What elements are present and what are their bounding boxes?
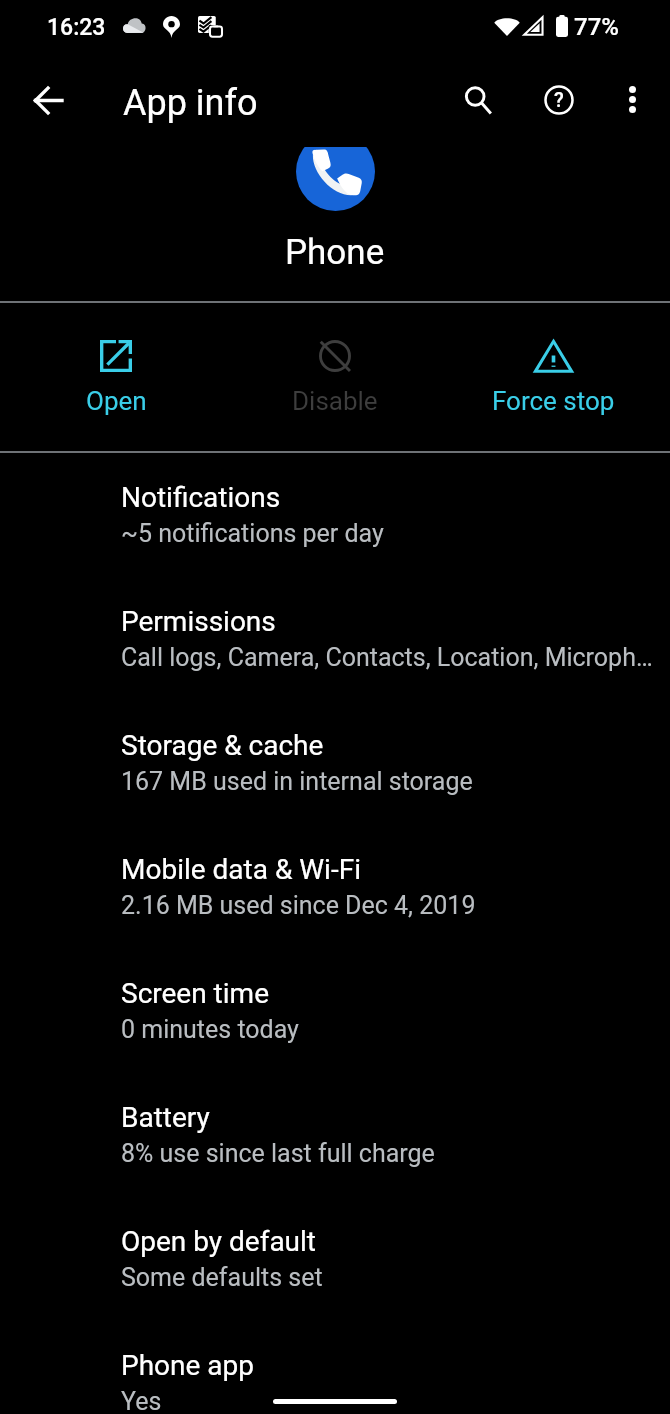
- button[interactable]: Disable: [225, 303, 444, 451]
- button[interactable]: Search: [450, 72, 505, 127]
- staticText: Screen time: [121, 977, 269, 1010]
- staticText: Open by default: [121, 1225, 317, 1258]
- staticText: Permissions: [121, 605, 276, 638]
- button[interactable]: Phone app: [0, 1321, 670, 1414]
- staticText: 0 minutes today: [121, 1015, 299, 1044]
- button[interactable]: Mobile data & Wi-Fi: [0, 825, 670, 949]
- button[interactable]: Force stop: [444, 303, 663, 451]
- staticText: Mobile data & Wi-Fi: [121, 853, 361, 886]
- staticText: Battery: [121, 1101, 210, 1134]
- staticText: Storage & cache: [121, 729, 324, 762]
- button[interactable]: More options: [605, 72, 660, 127]
- staticText: Phone: [285, 232, 385, 273]
- button[interactable]: Help: [531, 72, 586, 127]
- button[interactable]: Screen time: [0, 949, 670, 1073]
- staticText: 8% use since last full charge: [121, 1139, 435, 1168]
- button[interactable]: Open: [7, 303, 225, 451]
- button[interactable]: Permissions: [0, 577, 670, 701]
- staticText: 167 MB used in internal storage: [121, 767, 473, 796]
- button[interactable]: Notifications: [0, 453, 670, 577]
- button[interactable]: Open by default: [0, 1197, 670, 1321]
- staticText: Notifications: [121, 481, 281, 514]
- staticText: ?: [554, 88, 564, 111]
- staticText: 77%: [574, 13, 619, 41]
- staticText: App info: [123, 82, 258, 124]
- staticText: Yes: [121, 1387, 162, 1414]
- staticText: Call logs, Camera, Contacts, Location, M…: [121, 643, 653, 672]
- staticText: ~5 notifications per day: [121, 519, 384, 548]
- staticText: Phone app: [121, 1349, 254, 1382]
- staticText: 16:23: [47, 14, 106, 41]
- staticText: Open: [86, 386, 147, 416]
- staticText: Disable: [292, 386, 378, 416]
- staticText: 2.16 MB used since Dec 4, 2019: [121, 891, 476, 920]
- staticText: Some defaults set: [121, 1263, 323, 1292]
- staticText: Force stop: [492, 386, 615, 416]
- button[interactable]: Battery: [0, 1073, 670, 1197]
- button[interactable]: Storage & cache: [0, 701, 670, 825]
- button[interactable]: Back: [19, 71, 77, 129]
